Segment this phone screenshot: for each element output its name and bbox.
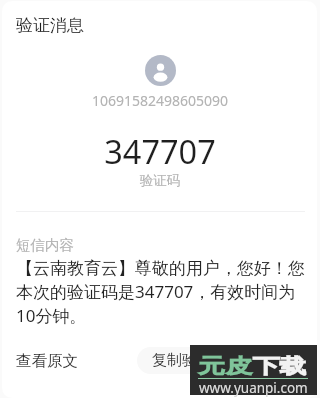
staticText: 347707 [0, 129, 320, 173]
staticText: 下载 [252, 354, 307, 379]
button[interactable]: 复制验证码 [137, 347, 242, 374]
staticText: 验证消息 [16, 15, 84, 36]
staticText: 【云南教育云】尊敬的用户，您好！您本次的验证码是347707，有效时间为10分钟… [16, 258, 308, 327]
staticText: 验证码 [0, 172, 320, 189]
button[interactable]: 查看原文 [16, 351, 78, 371]
staticText: 元皮 [198, 354, 252, 379]
staticText: 查看原文 [16, 351, 78, 371]
staticText: 复制验证码 [152, 351, 227, 370]
staticText: 短信内容 [16, 236, 74, 254]
staticText: www.yuanpi.com [199, 379, 308, 397]
staticText: 10691582498605090 [0, 91, 320, 110]
